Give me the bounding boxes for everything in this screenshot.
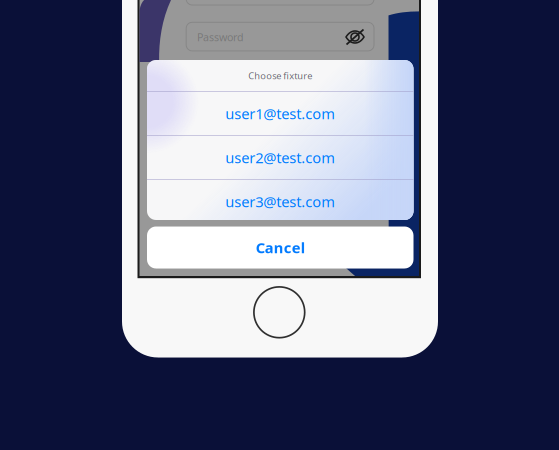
staticText: Cancel [256, 238, 305, 257]
staticText: Choose fixture [248, 70, 312, 82]
button[interactable]: user3@test.com [146, 203, 413, 247]
staticText: user2@test.com [225, 148, 335, 167]
staticText: user1@test.com [225, 104, 335, 123]
button[interactable]: Cancel [146, 204, 413, 246]
button[interactable]: user2@test.com [146, 203, 413, 247]
button[interactable]: user1@test.com [146, 203, 413, 247]
staticText: user3@test.com [225, 192, 335, 211]
staticText: Password [197, 30, 244, 44]
button[interactable]: Show password [267, 216, 291, 234]
